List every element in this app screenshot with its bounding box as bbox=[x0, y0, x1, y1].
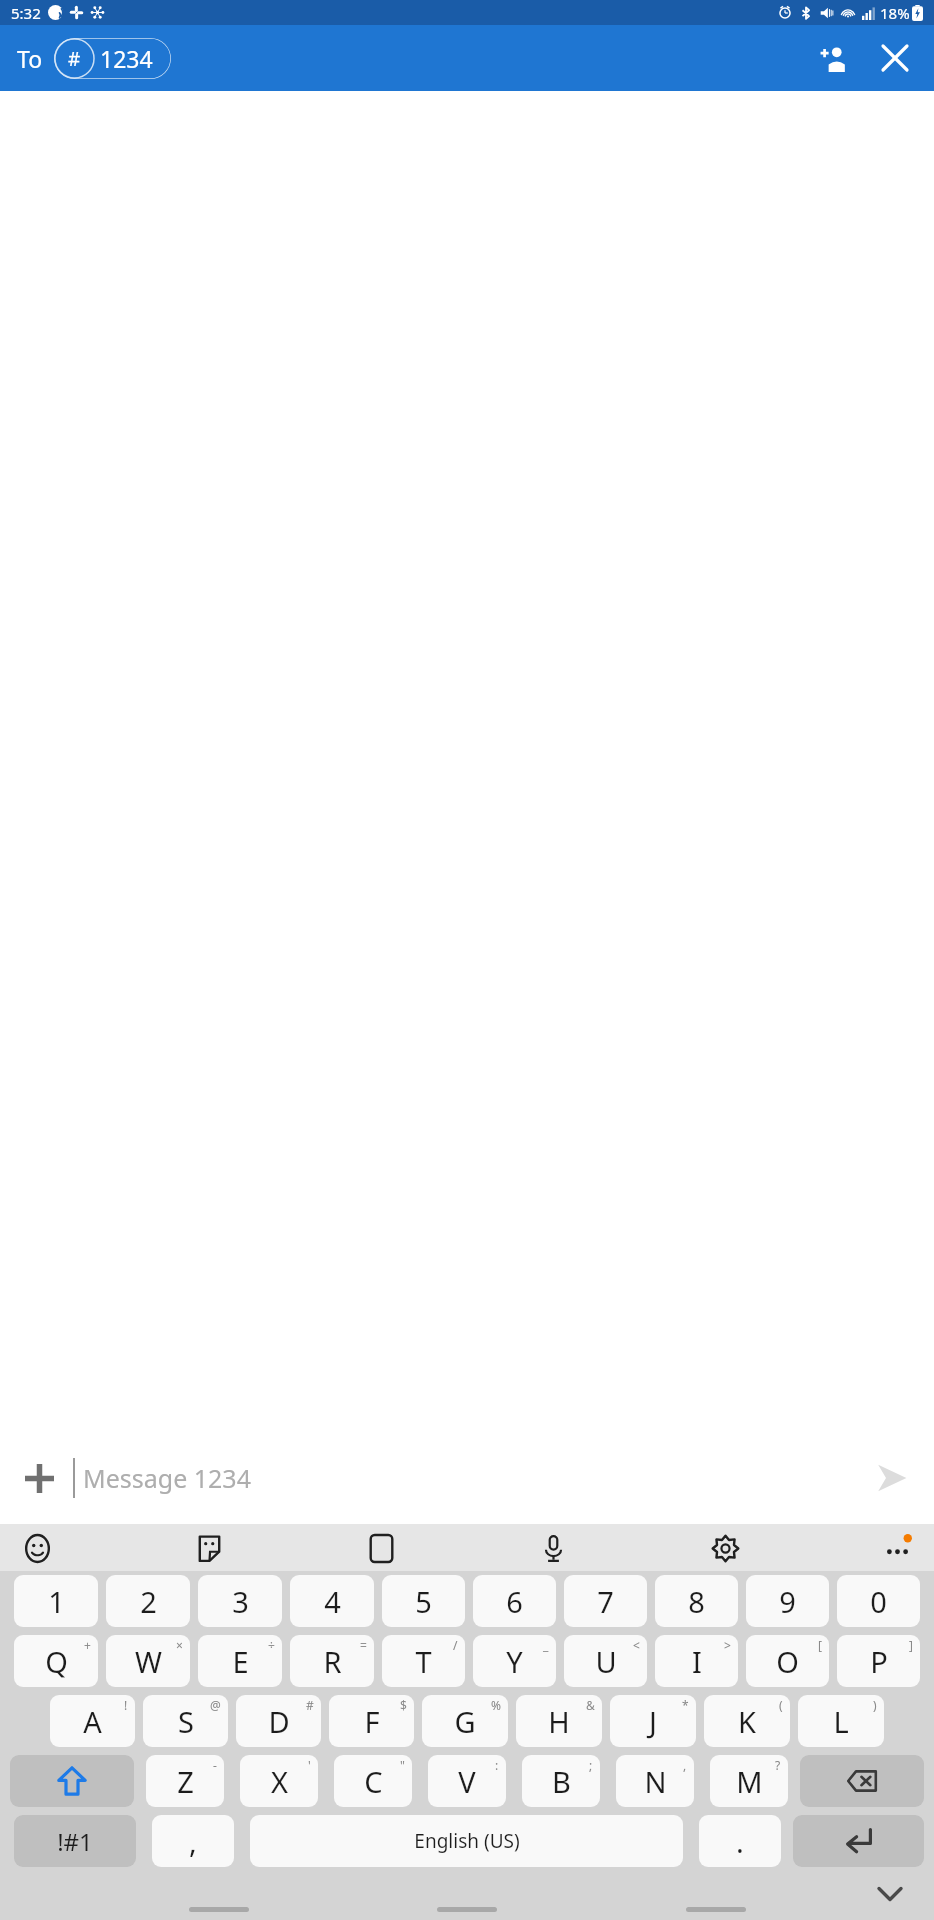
staticText: H bbox=[548, 1702, 570, 1741]
staticText: A bbox=[83, 1702, 102, 1741]
staticText: I bbox=[692, 1642, 702, 1681]
button[interactable]: * bbox=[610, 1695, 696, 1747]
button[interactable]: Attach bbox=[8, 1447, 70, 1509]
staticText: × bbox=[176, 1637, 183, 1653]
staticText: - bbox=[213, 1757, 217, 1773]
button[interactable]: [ bbox=[746, 1635, 829, 1687]
staticText: ? bbox=[775, 1757, 781, 1773]
button[interactable]: Enter bbox=[793, 1815, 924, 1867]
staticText: E bbox=[232, 1642, 249, 1681]
button[interactable]: !#1 bbox=[14, 1815, 136, 1867]
button[interactable]: Navigation bbox=[189, 1907, 249, 1912]
button[interactable]: Backspace bbox=[800, 1755, 924, 1807]
staticText: ÷ bbox=[268, 1637, 275, 1653]
staticText: N bbox=[644, 1762, 667, 1801]
staticText: B bbox=[552, 1762, 571, 1801]
staticText: ( bbox=[779, 1697, 783, 1713]
button[interactable]: 3 bbox=[198, 1575, 282, 1627]
button[interactable]: Voice input bbox=[530, 1525, 576, 1571]
button[interactable]: Navigation bbox=[437, 1907, 497, 1912]
button[interactable]: , bbox=[152, 1815, 234, 1867]
button[interactable]: + bbox=[14, 1635, 98, 1687]
staticText: X bbox=[271, 1762, 288, 1801]
button[interactable]: ) bbox=[798, 1695, 884, 1747]
staticText: F bbox=[364, 1702, 380, 1741]
staticText: ] bbox=[909, 1637, 913, 1653]
button[interactable]: Hide keyboard bbox=[870, 1874, 910, 1914]
button[interactable]: % bbox=[422, 1695, 508, 1747]
button[interactable]: > bbox=[655, 1635, 738, 1687]
staticText: J bbox=[649, 1702, 657, 1741]
staticText: 5 bbox=[415, 1582, 432, 1621]
staticText: 4 bbox=[324, 1582, 341, 1621]
button[interactable]: More options bbox=[874, 1525, 920, 1571]
button[interactable]: Add recipient bbox=[811, 36, 855, 80]
staticText: 2 bbox=[140, 1582, 157, 1621]
button[interactable]: 4 bbox=[290, 1575, 374, 1627]
button[interactable]: & bbox=[516, 1695, 602, 1747]
button[interactable]: ] bbox=[837, 1635, 920, 1687]
button[interactable]: Navigation bbox=[686, 1907, 746, 1912]
staticText: U bbox=[595, 1642, 617, 1681]
button[interactable]: Close bbox=[873, 36, 917, 80]
button[interactable]: < bbox=[564, 1635, 647, 1687]
button[interactable]: , bbox=[616, 1755, 694, 1807]
button[interactable]: ( bbox=[704, 1695, 790, 1747]
button[interactable]: × bbox=[106, 1635, 190, 1687]
staticText: " bbox=[400, 1757, 405, 1773]
button[interactable]: 5 bbox=[382, 1575, 465, 1627]
button[interactable]: Settings bbox=[702, 1525, 748, 1571]
staticText: [ bbox=[818, 1637, 822, 1653]
staticText: ) bbox=[873, 1697, 877, 1713]
button[interactable]: $ bbox=[329, 1695, 414, 1747]
button[interactable]: # bbox=[54, 38, 171, 79]
staticText: < bbox=[633, 1637, 640, 1653]
button[interactable]: 7 bbox=[564, 1575, 647, 1627]
staticText: + bbox=[84, 1637, 91, 1653]
button[interactable]: ÷ bbox=[198, 1635, 282, 1687]
staticText: 5:32 bbox=[11, 3, 41, 23]
button[interactable]: : bbox=[428, 1755, 506, 1807]
button[interactable]: / bbox=[382, 1635, 465, 1687]
staticText: 1 bbox=[48, 1582, 65, 1621]
button[interactable]: Stickers bbox=[186, 1525, 232, 1571]
button[interactable]: 6 bbox=[473, 1575, 556, 1627]
staticText: O bbox=[776, 1642, 799, 1681]
button[interactable]: GIF bbox=[358, 1525, 404, 1571]
button[interactable]: 8 bbox=[655, 1575, 738, 1627]
button[interactable]: - bbox=[146, 1755, 224, 1807]
staticText: , bbox=[683, 1757, 687, 1773]
staticText: ' bbox=[308, 1757, 311, 1773]
staticText: # bbox=[68, 46, 81, 72]
staticText: ! bbox=[124, 1697, 128, 1713]
button[interactable]: Message 1234 bbox=[83, 1432, 862, 1524]
staticText: > bbox=[724, 1637, 731, 1653]
button[interactable]: 2 bbox=[106, 1575, 190, 1627]
button[interactable]: _ bbox=[473, 1635, 556, 1687]
staticText: / bbox=[453, 1637, 458, 1653]
button[interactable]: 9 bbox=[746, 1575, 829, 1627]
button[interactable]: Send bbox=[862, 1448, 922, 1508]
staticText: !#1 bbox=[57, 1825, 93, 1858]
button[interactable]: 0 bbox=[837, 1575, 920, 1627]
button[interactable]: ' bbox=[240, 1755, 318, 1807]
button[interactable]: English (US) bbox=[250, 1815, 683, 1867]
button[interactable]: Shift bbox=[10, 1755, 134, 1807]
button[interactable]: ; bbox=[522, 1755, 600, 1807]
button[interactable]: ! bbox=[50, 1695, 135, 1747]
button[interactable]: Emoji bbox=[14, 1525, 60, 1571]
button[interactable]: . bbox=[699, 1815, 781, 1867]
button[interactable]: = bbox=[290, 1635, 374, 1687]
button[interactable]: ? bbox=[710, 1755, 788, 1807]
button[interactable]: " bbox=[334, 1755, 412, 1807]
button[interactable]: 1 bbox=[14, 1575, 98, 1627]
button[interactable]: # bbox=[236, 1695, 321, 1747]
staticText: @ bbox=[210, 1697, 221, 1713]
staticText: C bbox=[364, 1762, 383, 1801]
staticText: L bbox=[833, 1702, 849, 1741]
staticText: ; bbox=[589, 1757, 593, 1773]
staticText: Y bbox=[506, 1642, 523, 1681]
staticText: M bbox=[736, 1762, 763, 1801]
button[interactable]: @ bbox=[143, 1695, 228, 1747]
staticText: 6 bbox=[506, 1582, 523, 1621]
